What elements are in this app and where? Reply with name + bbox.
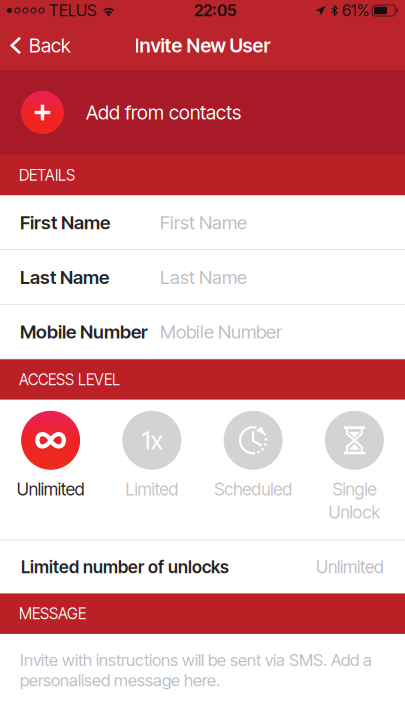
staticText: TELUS bbox=[49, 1, 96, 20]
staticText: 61% bbox=[342, 1, 369, 20]
staticText: First Name bbox=[160, 211, 247, 234]
staticText: 22:05 bbox=[194, 1, 237, 20]
button[interactable]: Single bbox=[304, 411, 405, 510]
staticText: Invite with instructions will be sent vi… bbox=[20, 650, 372, 690]
staticText: Limited number of unlocks bbox=[21, 556, 229, 577]
staticText: Unlock bbox=[328, 502, 380, 523]
button[interactable]: 1x bbox=[101, 411, 202, 510]
staticText: First Name bbox=[20, 211, 110, 234]
staticText: Unlimited bbox=[316, 556, 384, 577]
staticText: Mobile Number bbox=[20, 320, 148, 343]
staticText: Limited bbox=[125, 479, 178, 500]
staticText: Last Name bbox=[160, 266, 247, 288]
staticText: Unlimited bbox=[17, 479, 85, 500]
staticText: Single bbox=[332, 479, 376, 500]
button[interactable]: Scheduled bbox=[202, 411, 304, 510]
staticText: ACCESS LEVEL bbox=[19, 370, 120, 389]
staticText: 1x bbox=[141, 425, 162, 456]
staticText: MESSAGE bbox=[19, 604, 86, 623]
button[interactable]: Add from contacts bbox=[0, 70, 405, 155]
staticText: Invite New User bbox=[134, 34, 270, 57]
button[interactable]: Unlimited bbox=[0, 411, 101, 510]
staticText: Mobile Number bbox=[160, 320, 282, 343]
staticText: Back bbox=[29, 34, 71, 57]
button[interactable]: Back bbox=[0, 28, 79, 63]
staticText: Add from contacts bbox=[86, 101, 241, 124]
staticText: Scheduled bbox=[214, 479, 292, 500]
staticText: Last Name bbox=[20, 266, 109, 288]
staticText: DETAILS bbox=[19, 166, 75, 185]
